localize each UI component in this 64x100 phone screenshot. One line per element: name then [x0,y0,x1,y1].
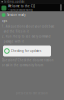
staticText: Questions? Check the documentation [2,58,54,62]
staticText: testing-update [4,0,25,3]
staticText: Session ready [7,13,25,17]
staticText: Welcome to the CLI [8,4,35,8]
staticText: 1. Ask questions about your codebase [2,25,55,28]
staticText: or ask in the community forum [2,63,43,67]
staticText: package with it [2,40,24,43]
staticText: 2. Run /help to see every command [2,35,51,38]
staticText: ~/projects/testing [8,8,33,12]
staticText: Tips [2,19,7,23]
staticText: Checking for updates [11,49,41,53]
staticText: and the files in it [2,30,29,33]
